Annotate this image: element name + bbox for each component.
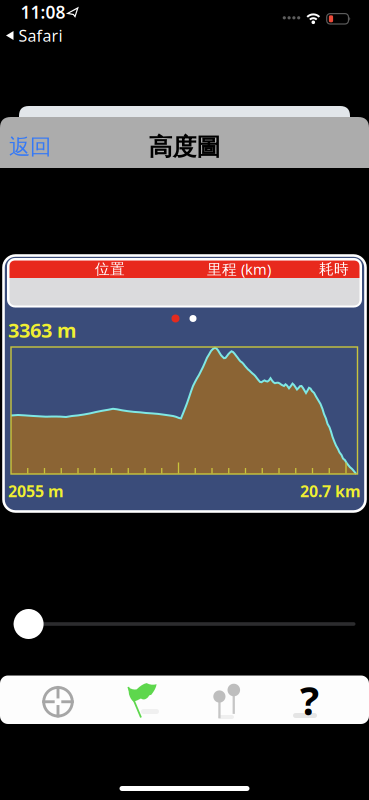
button[interactable]: Page control [166, 309, 202, 327]
staticText: 位置 [95, 260, 125, 278]
button[interactable]: Waypoints [186, 675, 266, 724]
button[interactable]: Center on location [18, 675, 98, 724]
button[interactable]: Back to Safari [0, 26, 72, 44]
staticText: 耗時 [319, 260, 349, 278]
staticText: 返回 [9, 134, 51, 160]
staticText: 11:08 [20, 0, 65, 23]
button[interactable]: Flags [102, 675, 182, 724]
button[interactable]: Position slider [12, 607, 357, 641]
staticText: 高度圖 [148, 132, 220, 162]
staticText: 里程 (km) [207, 259, 271, 279]
button[interactable]: Back [7, 132, 53, 162]
staticText: 2055 m [8, 480, 64, 502]
button[interactable]: Help [269, 675, 349, 724]
staticText: Safari [18, 25, 62, 46]
staticText: 3363 m [8, 317, 77, 343]
staticText: 20.7 km [300, 480, 361, 502]
staticText: ? [300, 673, 319, 726]
